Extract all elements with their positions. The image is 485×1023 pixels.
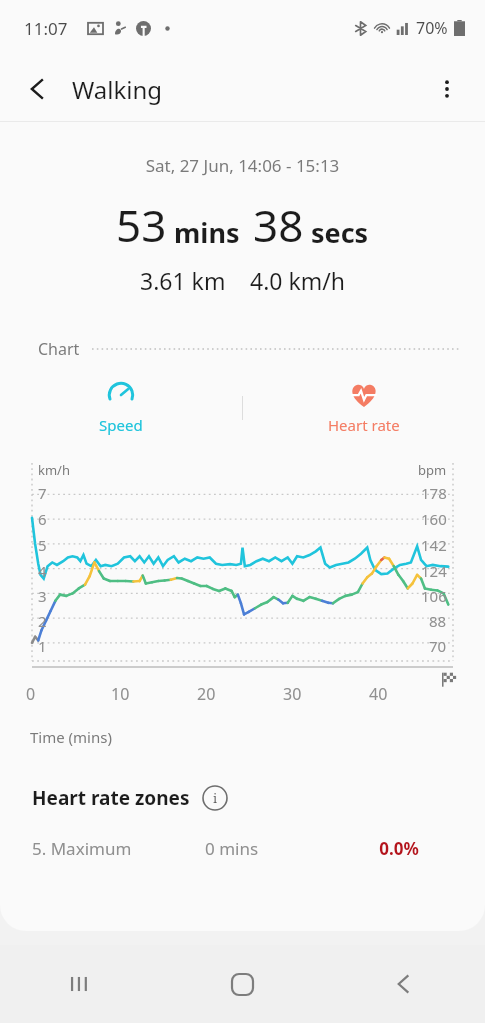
button[interactable]: Speed	[0, 380, 242, 435]
staticText: Walking	[72, 73, 163, 106]
staticText: Heart rate	[328, 415, 400, 435]
button[interactable]: Back	[14, 65, 62, 113]
button[interactable]: Back	[323, 945, 485, 1023]
staticText: 160	[421, 509, 447, 529]
staticText: 5	[38, 535, 47, 555]
button[interactable]: 5. Maximum	[32, 837, 453, 860]
staticText: Sat, 27 Jun, 14:06 - 15:13	[0, 154, 485, 177]
button[interactable]: Heart rate zones	[32, 785, 485, 811]
staticText: bpm	[418, 461, 447, 479]
staticText: 10	[111, 683, 197, 705]
staticText: 7	[38, 483, 47, 503]
staticText: Heart rate zones	[32, 785, 190, 811]
staticText: 0 mins	[205, 837, 345, 860]
staticText: 88	[429, 611, 447, 631]
staticText: 40	[369, 683, 455, 705]
button[interactable]: Recents	[0, 945, 161, 1023]
button[interactable]: Heart rate	[243, 380, 485, 435]
staticText: Speed	[99, 415, 143, 435]
staticText: 6	[38, 509, 47, 529]
staticText: 0.0%	[345, 837, 453, 860]
staticText: 0	[26, 683, 111, 705]
staticText: 178	[421, 483, 447, 503]
staticText: Chart	[38, 338, 80, 360]
staticText: secs	[311, 214, 369, 251]
staticText: 106	[421, 586, 447, 606]
staticText: 53	[116, 195, 167, 255]
staticText: 70%	[416, 17, 448, 39]
staticText: 70	[429, 636, 447, 656]
staticText: 38	[253, 195, 304, 255]
staticText: 5. Maximum	[32, 837, 205, 860]
staticText: Time (mins)	[30, 727, 112, 747]
staticText: 124	[421, 561, 447, 581]
staticText: mins	[174, 214, 240, 251]
button[interactable]: More options	[423, 65, 471, 113]
other: Info	[202, 785, 228, 811]
staticText: 20	[197, 683, 283, 705]
staticText: 3	[38, 586, 47, 606]
staticText: 4.0 km/h	[250, 265, 346, 296]
staticText: km/h	[38, 461, 70, 479]
staticText: 30	[283, 683, 369, 705]
staticText: i	[213, 789, 218, 807]
staticText: 3.61 km	[140, 265, 226, 296]
staticText: 4	[38, 561, 47, 581]
staticText: 11:07	[24, 17, 68, 40]
button[interactable]: Home	[161, 945, 323, 1023]
staticText: 2	[38, 611, 47, 631]
staticText: 1	[38, 636, 47, 656]
staticText: 142	[421, 535, 447, 555]
